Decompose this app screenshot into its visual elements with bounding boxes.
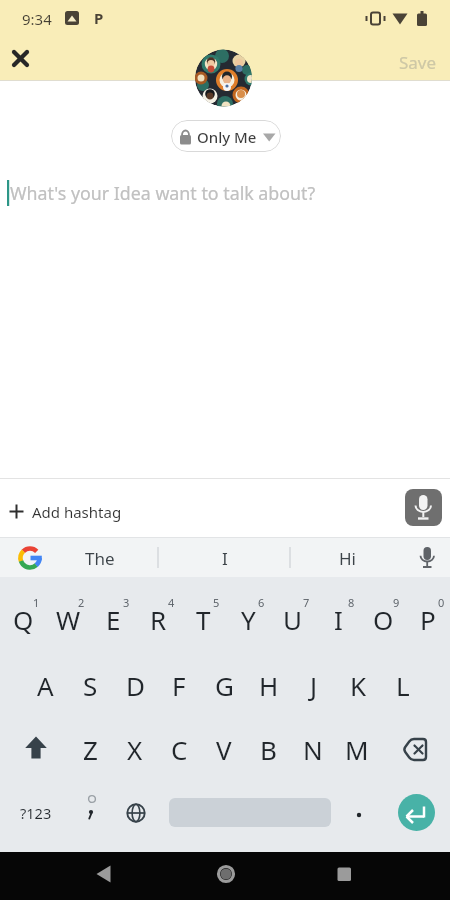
button[interactable]: Hi xyxy=(302,538,392,578)
staticText: Q xyxy=(13,602,34,637)
button[interactable]: T xyxy=(181,589,225,649)
button[interactable]: ?123 xyxy=(8,788,64,838)
button[interactable] xyxy=(114,790,158,836)
staticText: M xyxy=(345,732,369,767)
button[interactable] xyxy=(206,856,246,892)
staticText: 9:34 xyxy=(22,9,52,29)
button[interactable] xyxy=(405,539,445,575)
button[interactable]: D xyxy=(113,655,157,715)
staticText: V xyxy=(216,732,232,767)
button[interactable] xyxy=(324,856,364,892)
button[interactable]: B xyxy=(246,719,290,779)
staticText: C xyxy=(171,732,188,767)
staticText: 4 xyxy=(168,595,175,610)
button[interactable] xyxy=(84,856,124,892)
button[interactable] xyxy=(398,794,435,831)
button[interactable]: The xyxy=(50,538,150,578)
button[interactable] xyxy=(405,489,442,526)
button[interactable]: L xyxy=(381,655,425,715)
staticText: 0 xyxy=(438,595,445,610)
button[interactable] xyxy=(4,42,38,76)
button[interactable]: U xyxy=(271,589,315,649)
button[interactable]: Save xyxy=(378,42,450,82)
staticText: P xyxy=(420,602,436,637)
staticText: Save xyxy=(399,51,437,74)
button[interactable]: M xyxy=(335,719,379,779)
button[interactable]: J xyxy=(292,655,336,715)
staticText: E xyxy=(106,602,121,637)
staticText: ?123 xyxy=(20,803,52,823)
staticText: Add hashtag xyxy=(32,502,122,522)
staticText: O xyxy=(373,602,394,637)
staticText: R xyxy=(150,602,167,637)
staticText: D xyxy=(126,668,145,703)
button[interactable]: O xyxy=(361,589,405,649)
button[interactable]: Z xyxy=(68,719,112,779)
button[interactable]: F xyxy=(157,655,201,715)
staticText: B xyxy=(260,732,277,767)
button[interactable]: I xyxy=(316,589,360,649)
staticText: H xyxy=(259,668,279,703)
button[interactable]: H xyxy=(247,655,291,715)
staticText: U xyxy=(283,602,303,637)
staticText: J xyxy=(310,668,318,703)
button[interactable]: C xyxy=(157,719,201,779)
staticText: Hi xyxy=(339,547,356,570)
button[interactable] xyxy=(0,490,200,534)
staticText: The xyxy=(85,547,115,570)
staticText: Y xyxy=(241,602,256,637)
button[interactable]: X xyxy=(113,719,157,779)
staticText: 9 xyxy=(393,595,400,610)
staticText: 3 xyxy=(123,595,130,610)
staticText: W xyxy=(56,602,81,637)
staticText: Only Me xyxy=(197,127,257,147)
staticText: L xyxy=(396,668,410,703)
button[interactable]: K xyxy=(336,655,380,715)
staticText: F xyxy=(172,668,186,703)
button[interactable]: V xyxy=(202,719,246,779)
staticText: 7 xyxy=(303,595,310,610)
button[interactable]: N xyxy=(291,719,335,779)
staticText: T xyxy=(196,602,211,637)
button[interactable]: Q xyxy=(1,589,45,649)
button[interactable] xyxy=(171,120,281,152)
staticText: A xyxy=(37,668,54,703)
button[interactable]: A xyxy=(23,655,67,715)
button[interactable]: W xyxy=(46,589,90,649)
staticText: I xyxy=(222,547,228,570)
staticText: 5 xyxy=(213,595,220,610)
staticText: What's your Idea want to talk about? xyxy=(10,181,316,205)
staticText: 8 xyxy=(348,595,355,610)
staticText: Z xyxy=(83,732,98,767)
staticText: S xyxy=(83,668,98,703)
button[interactable]: S xyxy=(68,655,112,715)
staticText: 2 xyxy=(78,595,85,610)
staticText: 6 xyxy=(258,595,265,610)
button[interactable] xyxy=(394,726,438,772)
button[interactable]: I xyxy=(175,538,275,578)
staticText: I xyxy=(334,602,343,637)
staticText: X xyxy=(127,732,143,767)
staticText: N xyxy=(303,732,323,767)
staticText: K xyxy=(350,668,367,703)
button[interactable]: R xyxy=(136,589,180,649)
staticText: G xyxy=(215,668,234,703)
staticText: P xyxy=(94,8,104,28)
button[interactable]: E xyxy=(91,589,135,649)
button[interactable] xyxy=(337,790,381,836)
button[interactable]: P xyxy=(406,589,450,649)
button[interactable]: G xyxy=(202,655,246,715)
button[interactable]: Y xyxy=(226,589,270,649)
button[interactable] xyxy=(14,726,58,772)
staticText: 1 xyxy=(33,595,40,610)
button[interactable] xyxy=(69,790,113,836)
